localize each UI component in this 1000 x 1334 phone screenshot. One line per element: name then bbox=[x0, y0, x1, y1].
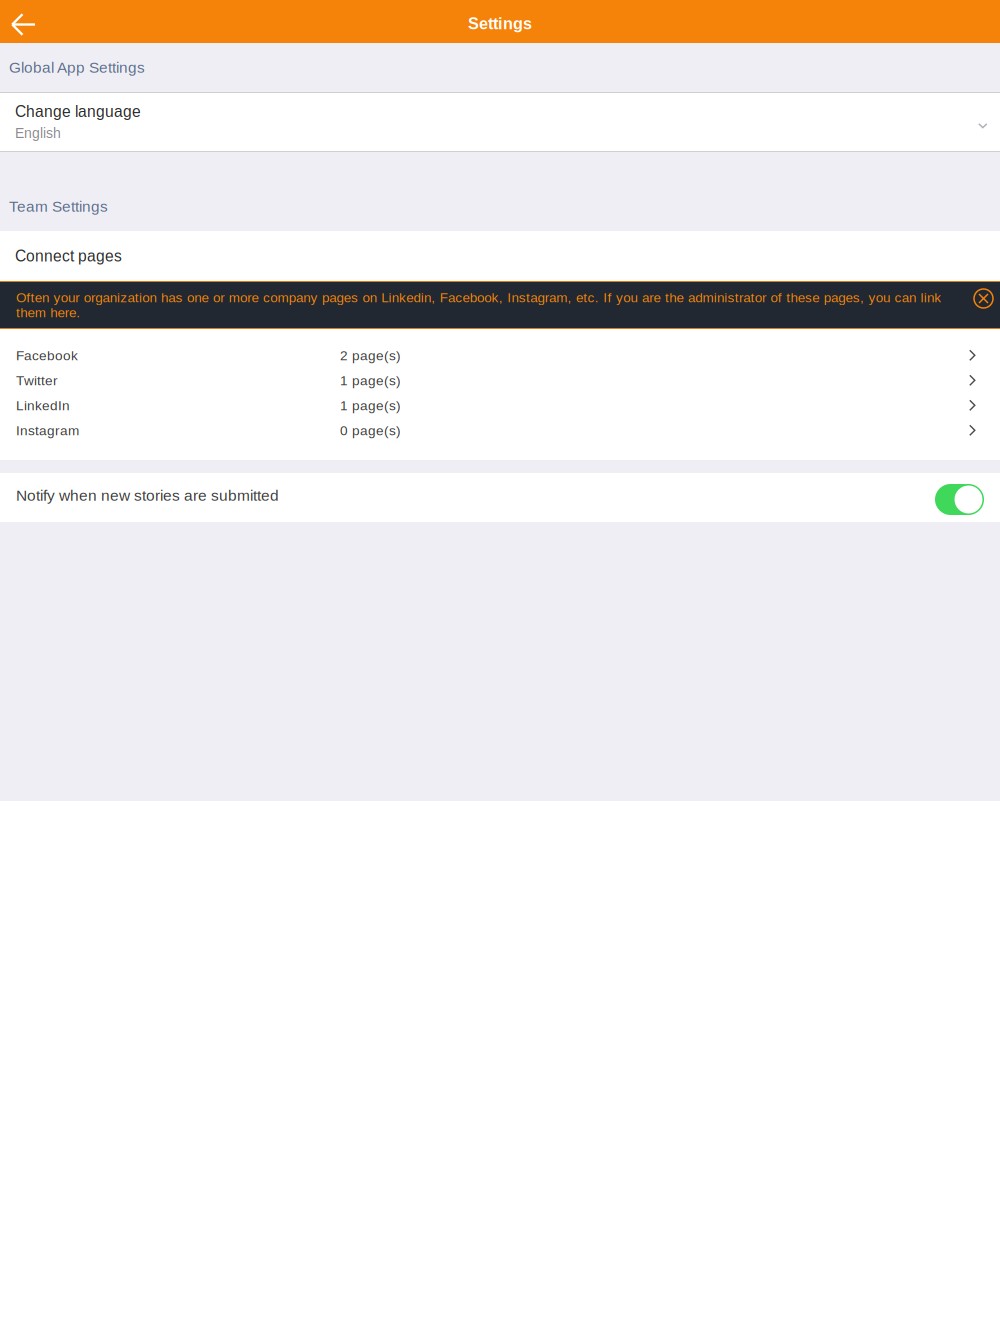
staticText: Global App Settings bbox=[9, 59, 145, 76]
button[interactable]: Notify when new stories are submitted bbox=[935, 480, 984, 515]
staticText: Team Settings bbox=[9, 198, 108, 215]
staticText: Instagram bbox=[16, 423, 79, 438]
staticText: English bbox=[15, 125, 61, 141]
button[interactable]: LinkedIn bbox=[0, 393, 1000, 418]
staticText: 0 page(s) bbox=[340, 423, 401, 438]
button[interactable]: Facebook bbox=[0, 343, 1000, 368]
staticText: Connect pages bbox=[15, 247, 122, 265]
staticText: Notify when new stories are submitted bbox=[16, 487, 279, 504]
button[interactable]: Change language bbox=[0, 93, 1000, 151]
staticText: Facebook bbox=[16, 348, 78, 363]
button[interactable]: Instagram bbox=[0, 418, 1000, 443]
button[interactable]: Twitter bbox=[0, 368, 1000, 393]
staticText: Change language bbox=[15, 103, 141, 120]
staticText: Often your organization has one or more … bbox=[16, 290, 941, 320]
staticText: LinkedIn bbox=[16, 398, 70, 413]
button[interactable]: Dismiss bbox=[973, 288, 994, 309]
staticText: Settings bbox=[468, 14, 532, 33]
staticText: 1 page(s) bbox=[340, 398, 401, 413]
button[interactable]: Back bbox=[0, 0, 36, 43]
staticText: 1 page(s) bbox=[340, 373, 401, 388]
staticText: 2 page(s) bbox=[340, 348, 401, 363]
staticText: Twitter bbox=[16, 373, 58, 388]
